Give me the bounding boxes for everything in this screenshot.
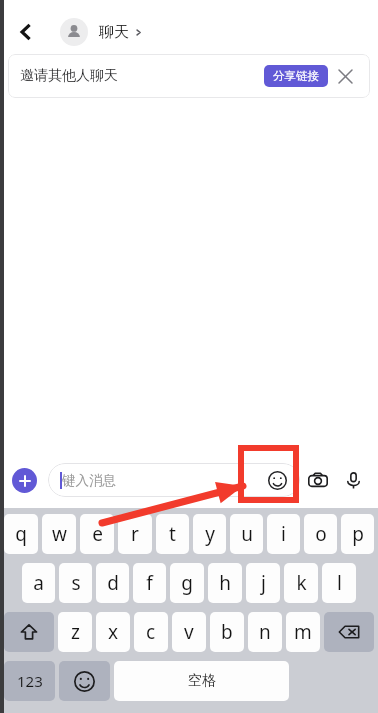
staticText: x (108, 619, 119, 645)
button[interactable]: u (230, 514, 263, 554)
button[interactable]: h (208, 563, 242, 603)
button[interactable]: j (246, 563, 280, 603)
button[interactable]: b (210, 612, 244, 652)
button[interactable]: a (22, 563, 55, 603)
staticText: a (33, 570, 44, 596)
staticText: r (131, 521, 139, 547)
staticText: m (294, 619, 312, 645)
button[interactable]: 空格 (114, 661, 289, 701)
button[interactable]: f (133, 563, 166, 603)
button[interactable]: 键入消息 (48, 463, 300, 497)
staticText: t (169, 521, 176, 547)
staticText: j (261, 570, 266, 596)
staticText: g (181, 570, 193, 596)
staticText: o (315, 521, 327, 547)
button[interactable]: Emoji (262, 465, 292, 495)
staticText: w (52, 521, 67, 547)
button[interactable]: c (134, 612, 168, 652)
staticText: 空格 (188, 672, 216, 690)
button[interactable]: g (170, 563, 204, 603)
staticText: 键入消息 (62, 472, 116, 489)
staticText: 聊天 (99, 23, 129, 42)
button[interactable]: Add (12, 468, 37, 493)
button[interactable]: k (284, 563, 318, 603)
staticText: u (241, 521, 253, 547)
button[interactable]: r (118, 514, 152, 554)
staticText: z (71, 619, 80, 645)
staticText: b (221, 619, 233, 645)
staticText: 分享链接 (273, 69, 319, 83)
staticText: n (259, 619, 271, 645)
button[interactable]: n (248, 612, 282, 652)
button[interactable]: o (304, 514, 337, 554)
staticText: k (296, 570, 307, 596)
button[interactable]: e (80, 514, 114, 554)
staticText: c (146, 619, 156, 645)
staticText: i (281, 521, 286, 547)
staticText: 123 (17, 671, 43, 691)
button[interactable]: p (341, 514, 374, 554)
staticText: y (205, 521, 215, 547)
button[interactable]: d (96, 563, 129, 603)
button[interactable]: Emoji keyboard (59, 661, 110, 701)
button[interactable]: y (193, 514, 226, 554)
button[interactable]: q (4, 514, 38, 554)
staticText: e (92, 521, 103, 547)
staticText: q (15, 521, 27, 547)
button[interactable]: i (267, 514, 300, 554)
button[interactable]: m (286, 612, 320, 652)
staticText: s (71, 570, 81, 596)
button[interactable]: z (58, 612, 92, 652)
button[interactable]: Shift (4, 612, 54, 652)
button[interactable]: Backspace (324, 612, 374, 652)
staticText: l (337, 570, 342, 596)
button[interactable]: t (156, 514, 189, 554)
staticText: 邀请其他人聊天 (20, 67, 118, 85)
button[interactable]: v (172, 612, 206, 652)
button[interactable]: w (42, 514, 76, 554)
button[interactable]: 分享链接 (264, 65, 328, 87)
button[interactable]: Close (328, 59, 362, 93)
staticText: v (184, 619, 194, 645)
button[interactable]: 聊天 (60, 18, 142, 46)
button[interactable]: Camera (300, 462, 336, 498)
staticText: p (352, 521, 364, 547)
button[interactable]: l (322, 563, 356, 603)
button[interactable]: Back (8, 14, 44, 50)
button[interactable]: 123 (4, 661, 55, 701)
button[interactable]: x (96, 612, 130, 652)
staticText: f (146, 570, 153, 596)
button[interactable]: Microphone (336, 463, 370, 497)
staticText: h (219, 570, 231, 596)
button[interactable]: s (59, 563, 92, 603)
staticText: d (107, 570, 119, 596)
